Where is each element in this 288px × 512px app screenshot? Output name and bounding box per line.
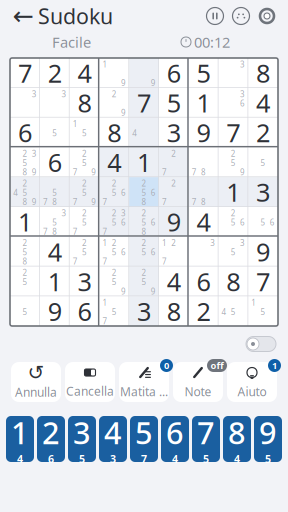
button[interactable]: ↺ — [9, 360, 63, 404]
staticText: 1 — [137, 145, 151, 179]
button[interactable]: 1 — [6, 416, 34, 462]
staticText: 1 — [251, 297, 256, 306]
staticText: 9 — [91, 167, 96, 176]
button[interactable]: 7 — [192, 416, 220, 462]
button[interactable]: Theme — [228, 3, 254, 29]
staticText: 8 — [256, 56, 270, 90]
button[interactable]: 3 — [68, 416, 96, 462]
staticText: 9 — [197, 116, 211, 149]
staticText: 5 — [261, 306, 266, 316]
staticText: 6 — [240, 217, 245, 226]
staticText — [182, 256, 184, 265]
button[interactable]: Aiuto — [225, 360, 279, 404]
button[interactable]: 6 — [161, 416, 189, 462]
staticText: 9 — [32, 167, 37, 176]
staticText: 2 — [82, 238, 87, 247]
staticText: 4 — [167, 264, 181, 298]
button[interactable]: Pause — [202, 3, 228, 29]
staticText: 6 — [77, 294, 91, 328]
staticText: 5 — [22, 187, 27, 197]
staticText: 5 — [261, 158, 266, 167]
button[interactable]: 4 — [99, 416, 127, 462]
staticText: 8 — [52, 226, 57, 236]
button[interactable]: 2 — [37, 416, 65, 462]
button[interactable]: 8 — [223, 416, 251, 462]
staticText — [15, 256, 17, 265]
staticText: 7 — [73, 197, 78, 206]
staticText: 8 — [141, 197, 146, 206]
button[interactable]: Back — [8, 1, 38, 31]
staticText: Sudoku — [38, 2, 113, 30]
staticText: 2 — [231, 208, 236, 217]
staticText: 7 — [43, 226, 48, 236]
staticText — [93, 256, 95, 265]
staticText: 6 — [151, 247, 156, 256]
button[interactable]: Cancella — [63, 360, 117, 404]
staticText: ← — [12, 2, 33, 30]
button[interactable]: Toggle — [244, 334, 278, 354]
staticText: 8 — [52, 197, 57, 206]
button[interactable]: 5 — [130, 416, 158, 462]
staticText: 8 — [77, 86, 91, 119]
staticText: 5 — [52, 217, 57, 226]
staticText — [173, 256, 175, 265]
staticText: 5 — [167, 86, 181, 119]
staticText: 2 — [171, 148, 176, 158]
staticText — [232, 226, 234, 236]
staticText: 2 — [48, 56, 62, 90]
button[interactable]: Note — [171, 360, 225, 404]
staticText — [54, 137, 56, 146]
button[interactable]: Settings — [254, 3, 280, 29]
staticText — [134, 226, 136, 236]
button[interactable]: Matita ... — [117, 360, 171, 404]
button[interactable]: 9 — [254, 416, 282, 462]
staticText: 2 — [22, 238, 27, 247]
staticText — [83, 256, 85, 265]
